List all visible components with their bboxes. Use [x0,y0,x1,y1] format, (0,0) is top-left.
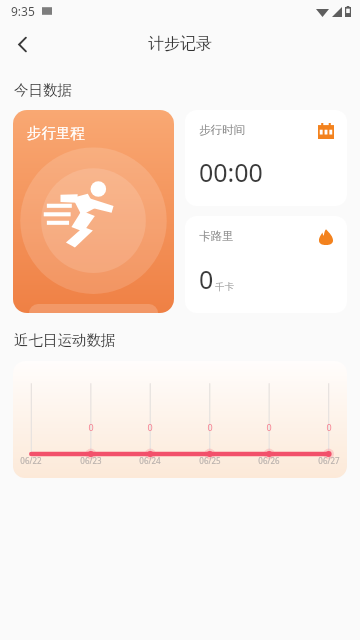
staticText: 06/22 [13,455,51,466]
button[interactable]: 返回 [0,22,44,66]
button[interactable]: 06/22 [13,361,347,478]
staticText: 0 [71,421,111,433]
button[interactable]: 步行时间 [185,110,347,206]
staticText: 千卡 [215,281,234,293]
staticText: 计步记录 [148,34,212,54]
staticText: 步行里程 [27,124,85,142]
staticText: 06/25 [190,455,230,466]
staticText: 卡路里 [199,229,234,243]
staticText: 步行时间 [199,123,245,137]
staticText: 06/24 [130,455,170,466]
staticText: 0 [199,262,214,296]
staticText: 00:00 [199,155,263,189]
staticText: 0 [249,421,289,433]
staticText: 今日数据 [14,81,72,99]
staticText: 0 [190,421,230,433]
staticText: 0 [130,421,170,433]
other: 卡路里 [318,229,334,245]
staticText: 06/27 [309,455,347,466]
button[interactable]: 卡路里 [185,216,347,313]
staticText: 9:35 [11,3,35,19]
other: 日历 [318,123,334,139]
staticText: 06/23 [71,455,111,466]
button[interactable]: 步行里程 [13,110,174,313]
staticText: 0 [309,421,347,433]
staticText: 近七日运动数据 [14,331,116,349]
staticText: 06/26 [249,455,289,466]
